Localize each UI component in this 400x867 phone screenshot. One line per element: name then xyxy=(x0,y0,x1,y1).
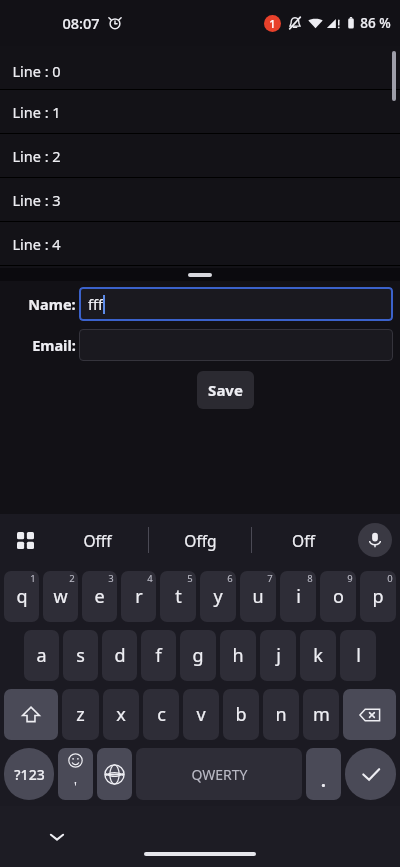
button[interactable]: Emoji xyxy=(58,748,93,800)
staticText: 8 xyxy=(307,572,313,585)
button[interactable]: t xyxy=(160,571,196,622)
staticText: i xyxy=(296,584,301,609)
staticText: Off xyxy=(292,530,315,551)
button[interactable]: n xyxy=(263,689,299,740)
button[interactable]: o xyxy=(320,571,356,622)
staticText: j xyxy=(276,643,281,668)
staticText: m xyxy=(313,702,330,727)
staticText: y xyxy=(213,584,223,609)
button[interactable]: w xyxy=(43,571,78,622)
button[interactable]: d xyxy=(102,630,137,681)
button[interactable]: Line : 1 xyxy=(0,90,400,133)
staticText: z xyxy=(76,702,85,727)
staticText: g xyxy=(192,643,204,668)
staticText: Name: xyxy=(28,294,76,314)
button[interactable]: i xyxy=(280,571,316,622)
staticText: Save xyxy=(208,380,243,400)
staticText: o xyxy=(333,584,344,609)
button[interactable]: u xyxy=(240,571,276,622)
staticText: c xyxy=(157,702,166,727)
staticText: t xyxy=(175,584,182,609)
button[interactable]: fff xyxy=(79,287,393,321)
staticText: r xyxy=(135,584,143,609)
button[interactable]: v xyxy=(183,689,219,740)
staticText: QWERTY xyxy=(191,765,248,784)
staticText: 08:07 xyxy=(62,13,100,33)
staticText: 7 xyxy=(267,572,273,585)
staticText: w xyxy=(53,584,68,609)
button[interactable]: Hide keyboard xyxy=(40,820,74,854)
button[interactable]: Line : 2 xyxy=(0,134,400,177)
button[interactable]: Save xyxy=(197,371,254,409)
button[interactable]: ?123 xyxy=(4,748,54,800)
button[interactable]: p xyxy=(360,571,396,622)
staticText: 4 xyxy=(147,572,153,585)
staticText: Line : 2 xyxy=(12,146,61,166)
button[interactable]: q xyxy=(4,571,39,622)
staticText: Line : 1 xyxy=(12,102,61,122)
staticText: 9 xyxy=(347,572,353,585)
staticText: x xyxy=(116,702,126,727)
staticText: a xyxy=(36,643,47,668)
button[interactable]: Line : 3 xyxy=(0,178,400,221)
button[interactable]: Voice input xyxy=(358,523,392,557)
staticText: 1 xyxy=(269,16,276,31)
staticText: s xyxy=(76,643,85,668)
staticText: Line : 0 xyxy=(12,61,61,81)
button[interactable]: f xyxy=(141,630,176,681)
button[interactable]: s xyxy=(63,630,98,681)
staticText: 1 xyxy=(30,572,36,585)
staticText: q xyxy=(16,584,28,609)
staticText: 6 xyxy=(227,572,233,585)
staticText: Line : 3 xyxy=(12,190,61,210)
staticText: 86 % xyxy=(360,14,391,32)
button[interactable]: Backspace xyxy=(343,689,396,740)
button[interactable]: b xyxy=(223,689,259,740)
button[interactable]: r xyxy=(121,571,156,622)
staticText: ' xyxy=(74,777,77,795)
staticText: u xyxy=(252,584,264,609)
staticText: fff xyxy=(88,294,103,314)
staticText: 2 xyxy=(69,572,75,585)
button[interactable]: l xyxy=(340,630,376,681)
button[interactable]: a xyxy=(24,630,59,681)
button[interactable]: j xyxy=(260,630,296,681)
button[interactable]: Shift xyxy=(4,689,58,740)
button[interactable]: Period xyxy=(306,748,341,800)
staticText: d xyxy=(114,643,126,668)
staticText: 0 xyxy=(387,572,393,585)
button[interactable]: Offg xyxy=(149,516,251,564)
button[interactable]: z xyxy=(62,689,99,740)
staticText: ?123 xyxy=(14,765,45,784)
staticText: v xyxy=(196,702,206,727)
button[interactable]: Line : 0 xyxy=(0,53,400,89)
button[interactable]: Offf xyxy=(46,516,148,564)
staticText: . xyxy=(321,769,326,792)
button[interactable]: x xyxy=(103,689,139,740)
staticText: p xyxy=(372,584,384,609)
staticText: e xyxy=(94,584,105,609)
staticText: h xyxy=(232,643,244,668)
button[interactable]: g xyxy=(180,630,216,681)
staticText: Email: xyxy=(32,335,76,355)
button[interactable]: e xyxy=(82,571,117,622)
button[interactable]: Toolbar xyxy=(7,522,43,558)
button[interactable]: Line : 4 xyxy=(0,222,400,265)
button[interactable]: Enter xyxy=(345,748,396,800)
staticText: Offg xyxy=(184,530,217,551)
button[interactable] xyxy=(79,329,393,361)
staticText: n xyxy=(275,702,287,727)
button[interactable]: c xyxy=(143,689,179,740)
button[interactable]: Off xyxy=(252,516,354,564)
button[interactable]: k xyxy=(300,630,336,681)
staticText: 5 xyxy=(187,572,193,585)
button[interactable]: QWERTY xyxy=(136,748,302,800)
button[interactable]: Change keyboard xyxy=(97,748,132,800)
button[interactable]: h xyxy=(220,630,256,681)
button[interactable]: m xyxy=(303,689,339,740)
button[interactable]: y xyxy=(200,571,236,622)
staticText: l xyxy=(356,643,361,668)
staticText: f xyxy=(155,643,162,668)
staticText: 3 xyxy=(108,572,114,585)
staticText: Line : 4 xyxy=(12,234,61,254)
